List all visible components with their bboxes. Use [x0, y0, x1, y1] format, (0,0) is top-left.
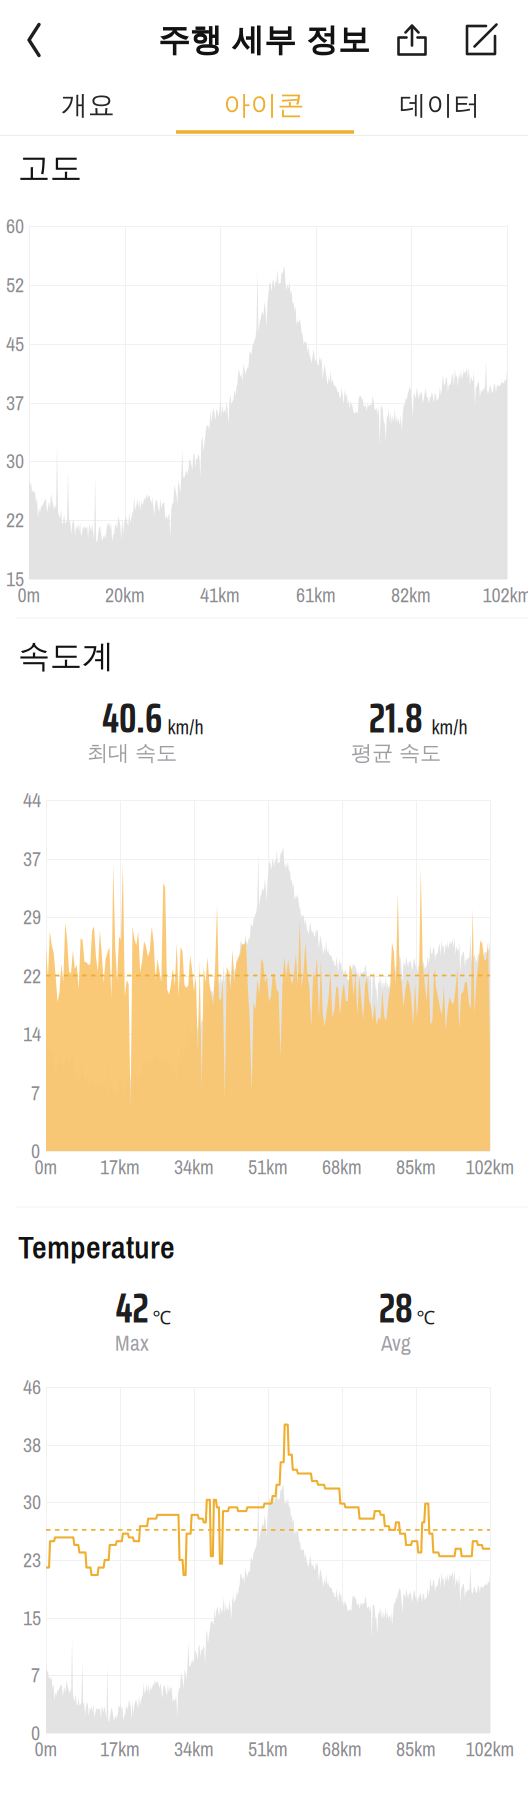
staticText: 102km [465, 1735, 514, 1762]
staticText: 45 [6, 330, 24, 357]
button[interactable]: 아이콘 [176, 75, 352, 135]
staticText: 0 [31, 1137, 40, 1164]
staticText: 85km [396, 1153, 436, 1180]
staticText: Avg [381, 1329, 411, 1357]
staticText: 68km [322, 1153, 362, 1180]
staticText: 82km [391, 581, 431, 608]
staticText: 평균 속도 [351, 740, 441, 766]
staticText: Max [115, 1329, 149, 1357]
staticText: 0m [34, 1735, 57, 1762]
button[interactable]: Share [389, 16, 435, 63]
button[interactable]: 개요 [0, 75, 176, 135]
staticText: 15 [6, 565, 24, 592]
staticText: 7 [31, 1079, 40, 1106]
staticText: 41km [200, 581, 240, 608]
staticText: 속도계 [18, 636, 114, 676]
staticText: 51km [248, 1735, 288, 1762]
staticText: ℃ [152, 1304, 171, 1330]
staticText: 34km [174, 1735, 214, 1762]
staticText: 52 [6, 271, 24, 298]
staticText: 29 [23, 903, 41, 930]
staticText: 30 [23, 1488, 41, 1515]
staticText: Temperature [18, 1225, 175, 1268]
staticText: 30 [6, 447, 24, 474]
staticText: 15 [23, 1604, 41, 1631]
staticText: 21.8 [369, 685, 423, 751]
staticText: 개요 [61, 88, 115, 122]
staticText: 61km [296, 581, 336, 608]
button[interactable]: Back [7, 16, 55, 64]
staticText: 68km [322, 1735, 362, 1762]
staticText: 23 [23, 1546, 41, 1573]
staticText: 44 [23, 786, 41, 813]
staticText: 7 [31, 1661, 40, 1688]
button[interactable]: 데이터 [352, 75, 528, 135]
staticText: 최대 속도 [87, 740, 177, 766]
staticText: 42 [115, 1275, 148, 1341]
staticText: 51km [248, 1153, 288, 1180]
staticText: 34km [174, 1153, 214, 1180]
staticText: 102km [465, 1153, 514, 1180]
staticText: 17km [100, 1153, 140, 1180]
staticText: 38 [23, 1431, 41, 1458]
staticText: 102km [482, 581, 528, 608]
staticText: 22 [23, 962, 41, 989]
staticText: 주행 세부 정보 [158, 20, 370, 60]
staticText: 0m [34, 1153, 57, 1180]
staticText: 0 [31, 1719, 40, 1746]
staticText: 28 [379, 1275, 413, 1341]
staticText: 40.6 [102, 685, 162, 751]
staticText: 아이콘 [223, 88, 304, 122]
staticText: ℃ [416, 1304, 435, 1330]
staticText: 60 [6, 212, 24, 239]
staticText: 14 [23, 1020, 41, 1047]
staticText: 고도 [18, 148, 82, 188]
staticText: 20km [105, 581, 145, 608]
staticText: 22 [6, 506, 24, 533]
staticText: 17km [100, 1735, 140, 1762]
staticText: km/h [431, 713, 467, 740]
staticText: 37 [23, 845, 41, 872]
staticText: 0m [17, 581, 40, 608]
staticText: 85km [396, 1735, 436, 1762]
staticText: 데이터 [399, 88, 480, 122]
staticText: km/h [167, 713, 203, 740]
staticText: 37 [6, 389, 24, 416]
button[interactable]: Edit [458, 17, 504, 63]
staticText: 46 [23, 1373, 41, 1400]
